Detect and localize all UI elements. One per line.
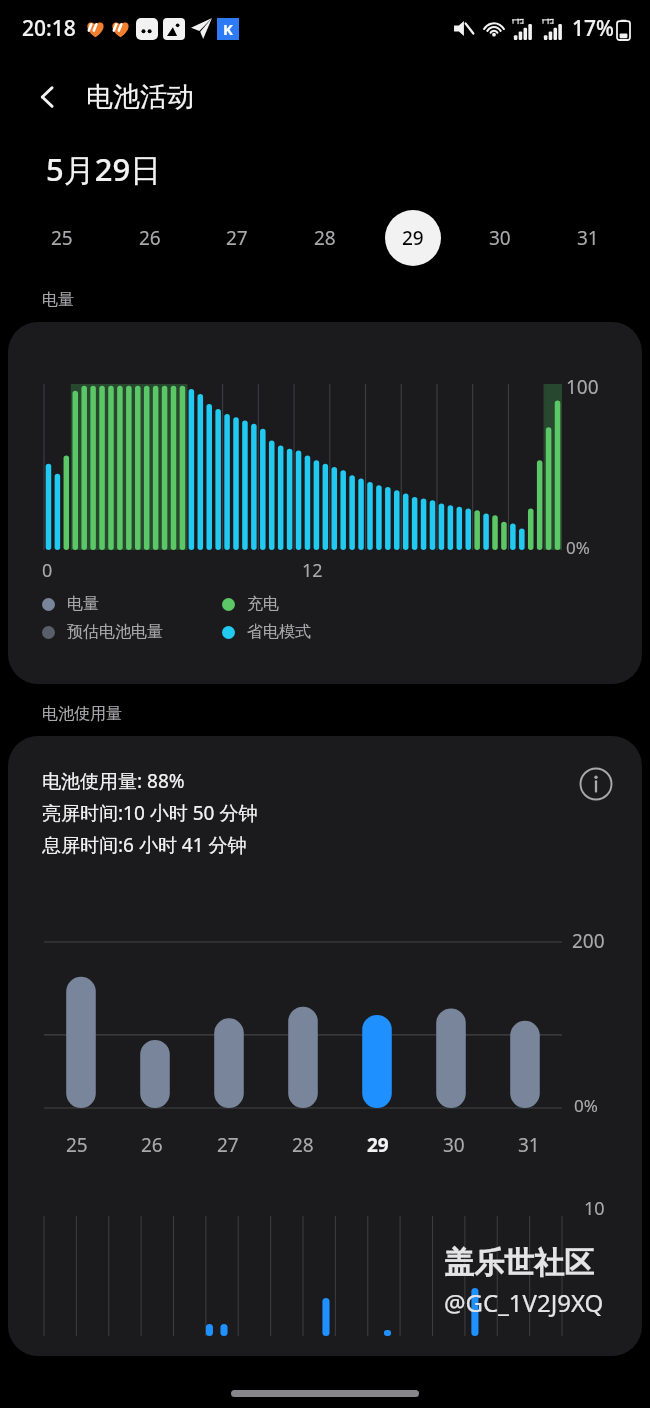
staticText: @GC_1V2J9XQ	[444, 1286, 604, 1319]
staticText: 5月29日	[46, 148, 162, 190]
staticText: 28	[292, 1132, 314, 1158]
staticText: 盖乐世社区	[444, 1244, 594, 1282]
staticText: 28	[314, 225, 336, 251]
button[interactable]: 29	[385, 210, 441, 266]
staticText: 25	[66, 1132, 88, 1158]
button[interactable]: 28	[297, 210, 353, 266]
button[interactable]: 25	[34, 210, 90, 266]
staticText: 30	[489, 225, 511, 251]
staticText: 电池使用量	[42, 704, 122, 724]
staticText: K	[223, 19, 233, 39]
staticText: 100	[566, 374, 599, 400]
staticText: 电量	[67, 594, 99, 614]
staticText: 26	[139, 225, 161, 251]
button[interactable]: 26	[122, 210, 178, 266]
staticText: 息屏时间:6 小时 41 分钟	[42, 832, 247, 858]
staticText: 电池使用量: 88%	[42, 768, 185, 794]
staticText: 亮屏时间:10 小时 50 分钟	[42, 800, 258, 826]
staticText: 预估电池电量	[67, 622, 163, 642]
staticText: 12	[302, 558, 323, 583]
staticText: 30	[443, 1132, 465, 1158]
staticText: 27	[217, 1132, 239, 1158]
staticText: 电池活动	[86, 80, 194, 114]
staticText: 0%	[566, 536, 590, 559]
staticText: 17%	[572, 14, 614, 43]
staticText: 200	[572, 928, 605, 954]
staticText: 29	[367, 1132, 389, 1158]
button[interactable]: 30	[472, 210, 528, 266]
button[interactable]: 100	[8, 322, 642, 684]
staticText: 25	[51, 225, 73, 251]
button[interactable]: 电池使用量: 88%	[8, 736, 642, 1356]
staticText: 26	[141, 1132, 163, 1158]
button[interactable]: 31	[560, 210, 616, 266]
staticText: 29	[402, 225, 424, 251]
staticText: 充电	[247, 594, 279, 614]
staticText: 电量	[42, 290, 74, 310]
button[interactable]: Information	[574, 762, 618, 806]
staticText: 省电模式	[247, 622, 311, 642]
staticText: 0%	[574, 1094, 598, 1117]
staticText: 0	[42, 558, 53, 583]
staticText: 31	[518, 1132, 540, 1158]
button[interactable]: 27	[209, 210, 265, 266]
staticText: 31	[577, 225, 599, 251]
staticText: 27	[226, 225, 248, 251]
button[interactable]: Back	[24, 73, 72, 121]
staticText: 20:18	[22, 14, 76, 43]
staticText: 10	[584, 1196, 605, 1221]
